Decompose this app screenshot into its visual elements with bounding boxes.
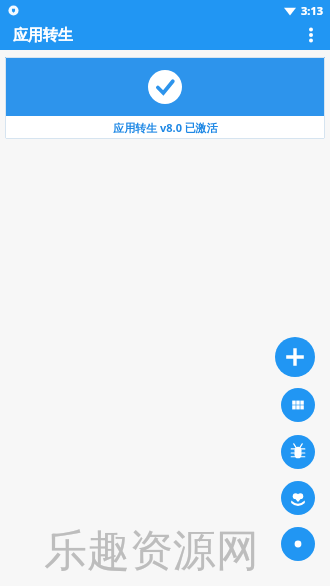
button[interactable]: Support xyxy=(281,481,315,515)
staticText: 3:13 xyxy=(301,3,323,18)
button[interactable]: Debug xyxy=(281,435,315,469)
staticText: 应用转生 v8.0 已激活 xyxy=(113,120,218,135)
button[interactable]: Settings xyxy=(281,527,315,561)
button[interactable]: More options xyxy=(296,20,326,50)
button[interactable]: Add xyxy=(275,337,315,377)
staticText: 应用转生 xyxy=(13,26,73,45)
staticText: 乐趣资源网 xyxy=(44,524,259,578)
button[interactable]: Apps xyxy=(281,388,315,422)
button[interactable]: 应用转生 v8.0 已激活 xyxy=(5,57,325,139)
